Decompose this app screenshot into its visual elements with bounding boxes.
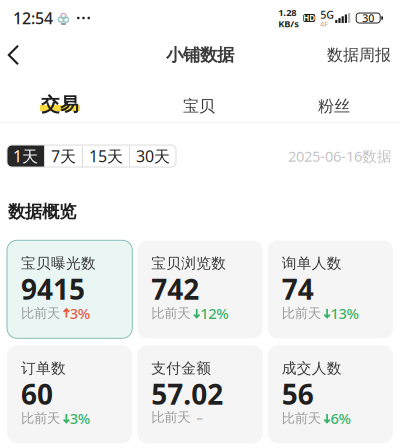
staticText: 数据概览	[8, 201, 76, 222]
staticText: 6%	[330, 408, 350, 428]
staticText: 订单数	[21, 359, 66, 377]
staticText: 比前天	[282, 305, 321, 321]
button[interactable]: 支付金额	[137, 345, 263, 443]
staticText: 支付金额	[151, 359, 211, 377]
staticText: 1天	[13, 145, 38, 167]
button[interactable]: 15天	[83, 145, 129, 167]
staticText: 比前天	[21, 305, 60, 321]
staticText: 13%	[330, 303, 358, 323]
staticText: 15天	[89, 145, 123, 167]
button[interactable]: 询单人数	[268, 240, 393, 338]
staticText: 56	[282, 375, 314, 412]
staticText: 3%	[70, 303, 90, 323]
staticText: 宝贝	[183, 96, 215, 116]
staticText: 74	[282, 270, 314, 307]
staticText: 比前天	[151, 305, 190, 321]
staticText: 交易	[41, 93, 79, 116]
staticText: 5G	[320, 7, 334, 22]
staticText: –	[190, 408, 203, 426]
staticText: 宝贝曝光数	[21, 254, 96, 272]
staticText: 比前天	[151, 409, 190, 426]
staticText: 12:54	[13, 7, 53, 29]
staticText: 4F	[320, 20, 327, 29]
staticText: 3%	[70, 408, 90, 428]
staticText: 成交人数	[282, 359, 342, 377]
button[interactable]: 1天	[7, 145, 44, 167]
staticText: KB/s	[278, 17, 299, 30]
button[interactable]: 30天	[130, 145, 176, 167]
button[interactable]: 数据周报	[321, 38, 400, 72]
staticText: HD	[303, 13, 315, 23]
staticText: 60	[21, 375, 53, 412]
button[interactable]: 交易	[0, 86, 120, 116]
button[interactable]: 成交人数	[268, 345, 393, 443]
staticText: 小铺数据	[166, 44, 234, 66]
button[interactable]: 宝贝曝光数	[7, 240, 132, 338]
staticText: 比前天	[21, 410, 60, 426]
button[interactable]: 订单数	[7, 345, 132, 443]
staticText: 30天	[136, 145, 170, 167]
staticText: 询单人数	[282, 254, 342, 272]
staticText: 宝贝浏览数	[151, 254, 226, 272]
staticText: 57.02	[151, 375, 223, 412]
staticText: 粉丝	[318, 96, 350, 116]
staticText: 9415	[21, 270, 85, 307]
staticText: 1.28	[278, 6, 296, 18]
button[interactable]: 宝贝	[120, 86, 278, 116]
button[interactable]: Back	[0, 38, 34, 72]
staticText: 30	[362, 11, 374, 25]
button[interactable]: 粉丝	[278, 86, 390, 116]
button[interactable]: 宝贝浏览数	[137, 240, 263, 338]
staticText: 12%	[200, 303, 228, 323]
staticText: 比前天	[282, 410, 321, 426]
staticText: 742	[151, 270, 199, 307]
staticText: 数据周报	[327, 45, 391, 65]
staticText: 7天	[51, 145, 76, 167]
staticText: 2025-06-16数据	[288, 146, 392, 166]
button[interactable]: 7天	[45, 145, 82, 167]
